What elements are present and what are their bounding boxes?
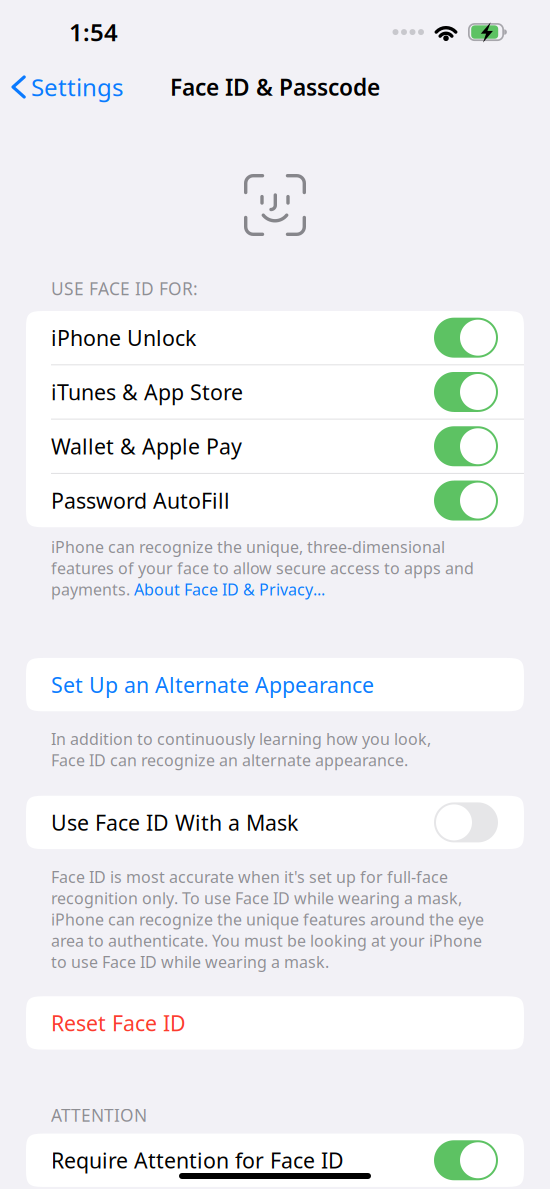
staticText: ATTENTION	[51, 1104, 147, 1127]
button[interactable]: Require Attention for Face ID	[26, 1134, 524, 1187]
staticText: Face ID & Passcode	[170, 72, 380, 102]
staticText: USE FACE ID FOR:	[51, 277, 198, 300]
staticText: Reset Face ID	[51, 1009, 186, 1037]
staticText: Wallet & Apple Pay	[51, 432, 242, 460]
staticText: 1:54	[69, 16, 118, 48]
button[interactable]: iTunes & App Store	[26, 365, 524, 419]
button[interactable]: Reset Face ID	[26, 996, 524, 1050]
staticText: payments.	[51, 579, 134, 600]
button[interactable]: Use Face ID With a Mask	[26, 796, 524, 849]
button[interactable]: About Face ID & Privacy...	[134, 579, 325, 600]
staticText: In addition to continuously learning how…	[51, 728, 431, 771]
button[interactable]: Settings	[0, 63, 131, 111]
staticText: Require Attention for Face ID	[51, 1146, 344, 1174]
button[interactable]: Wallet & Apple Pay	[26, 420, 524, 473]
staticText: Face ID is most accurate when it's set u…	[51, 866, 484, 972]
staticText: iTunes & App Store	[51, 378, 243, 406]
staticText: iPhone Unlock	[51, 323, 196, 352]
staticText: Use Face ID With a Mask	[51, 808, 298, 836]
button[interactable]: iPhone Unlock	[26, 311, 524, 364]
staticText: Password AutoFill	[51, 486, 230, 515]
button[interactable]: Set Up an Alternate Appearance	[26, 658, 524, 711]
staticText: iPhone can recognize the unique, three-d…	[51, 536, 474, 579]
staticText: Set Up an Alternate Appearance	[51, 670, 374, 699]
button[interactable]: Password AutoFill	[26, 474, 524, 527]
staticText: About Face ID & Privacy...	[134, 579, 325, 600]
staticText: Settings	[31, 71, 123, 103]
